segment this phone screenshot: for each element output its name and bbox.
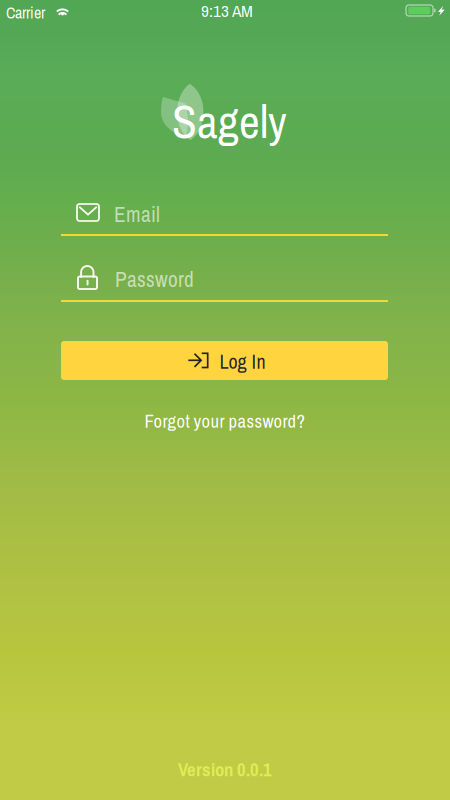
staticText: Sagely (172, 91, 287, 152)
staticText: Email (114, 200, 160, 229)
staticText: Version 0.0.1 (178, 757, 272, 782)
staticText: Carrier (6, 2, 45, 24)
staticText: 9:13 AM (201, 0, 253, 22)
button[interactable]: Log In (61, 341, 388, 380)
staticText: Log In (219, 348, 265, 375)
staticText: Password (115, 265, 194, 294)
button[interactable]: Forgot your password? (135, 406, 315, 436)
staticText: Forgot your password? (144, 408, 305, 433)
